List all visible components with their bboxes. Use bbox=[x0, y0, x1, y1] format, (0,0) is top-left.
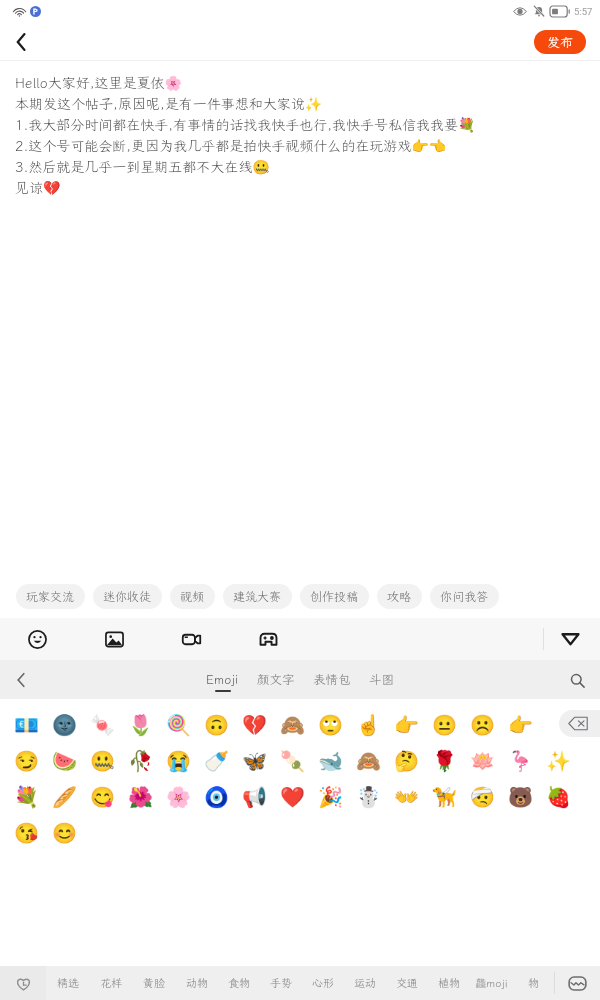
button[interactable]: 🍡 bbox=[274, 742, 310, 778]
button[interactable]: Recent bbox=[0, 966, 46, 1000]
button[interactable]: 😭 bbox=[160, 742, 196, 778]
button[interactable]: Emoji bbox=[197, 668, 248, 694]
staticText: 交通 bbox=[396, 976, 418, 990]
button[interactable]: 动物 bbox=[175, 966, 218, 1000]
button[interactable]: 🍉 bbox=[46, 742, 82, 778]
button[interactable]: Emoji bbox=[22, 624, 52, 654]
button[interactable]: Image bbox=[99, 624, 129, 654]
button[interactable]: 🌺 bbox=[122, 778, 158, 814]
button[interactable]: 颜文字 bbox=[248, 668, 304, 694]
button[interactable]: 🐋 bbox=[312, 742, 348, 778]
button[interactable]: 🥖 bbox=[46, 778, 82, 814]
button[interactable]: 运动 bbox=[344, 966, 386, 1000]
button[interactable]: 你问我答 bbox=[430, 584, 499, 609]
button[interactable]: 玩家交流 bbox=[16, 584, 85, 609]
staticText: 🙄 bbox=[318, 713, 343, 736]
button[interactable]: 建筑大赛 bbox=[223, 584, 292, 609]
button[interactable]: Back bbox=[8, 667, 34, 693]
button[interactable]: 🍬 bbox=[84, 706, 120, 742]
button[interactable]: Game bbox=[253, 624, 283, 654]
button[interactable]: 视频 bbox=[170, 584, 215, 609]
button[interactable]: 😏 bbox=[8, 742, 44, 778]
button[interactable]: 🦮 bbox=[426, 778, 462, 814]
button[interactable]: 🦩 bbox=[502, 742, 538, 778]
staticText: Emoji bbox=[206, 671, 239, 687]
button[interactable]: 👉 bbox=[502, 706, 538, 742]
button[interactable]: 🍭 bbox=[160, 706, 196, 742]
button[interactable]: 📢 bbox=[236, 778, 272, 814]
button[interactable]: ☝ bbox=[350, 706, 386, 742]
button[interactable]: 🙈 bbox=[350, 742, 386, 778]
staticText: 😊 bbox=[52, 821, 77, 844]
button[interactable]: 🪷 bbox=[464, 742, 500, 778]
staticText: 🪷 bbox=[470, 749, 495, 772]
button[interactable]: 🌚 bbox=[46, 706, 82, 742]
button[interactable]: 黄脸 bbox=[132, 966, 175, 1000]
staticText: 😏 bbox=[14, 749, 39, 772]
button[interactable]: 💐 bbox=[8, 778, 44, 814]
button[interactable]: 🤐 bbox=[84, 742, 120, 778]
staticText: 创作投稿 bbox=[310, 589, 359, 605]
button[interactable]: 物 bbox=[512, 966, 554, 1000]
button[interactable]: 🌸 bbox=[160, 778, 196, 814]
button[interactable]: 😋 bbox=[84, 778, 120, 814]
button[interactable]: 🍼 bbox=[198, 742, 234, 778]
staticText: 食物 bbox=[228, 976, 250, 990]
staticText: 🥀 bbox=[128, 749, 153, 772]
staticText: 🧿 bbox=[204, 785, 229, 808]
staticText: 😐 bbox=[432, 713, 457, 736]
button[interactable]: Video bbox=[176, 624, 206, 654]
button[interactable]: 手势 bbox=[260, 966, 302, 1000]
button[interactable]: 🙃 bbox=[198, 706, 234, 742]
button[interactable]: ❤ bbox=[274, 778, 310, 814]
button[interactable]: 花样 bbox=[89, 966, 132, 1000]
button[interactable]: Back bbox=[4, 25, 38, 59]
staticText: 🐻 bbox=[508, 785, 533, 808]
button[interactable]: 🧿 bbox=[198, 778, 234, 814]
button[interactable]: 迷你收徒 bbox=[93, 584, 162, 609]
button[interactable]: 🤕 bbox=[464, 778, 500, 814]
button[interactable]: Backspace bbox=[559, 710, 600, 737]
button[interactable]: 斗图 bbox=[360, 668, 404, 694]
button[interactable]: 🦋 bbox=[236, 742, 272, 778]
staticText: Hello大家好,这里是夏依🌸 bbox=[15, 74, 182, 92]
button[interactable]: 💶 bbox=[8, 706, 44, 742]
button[interactable]: 🥀 bbox=[122, 742, 158, 778]
button[interactable]: 👉 bbox=[388, 706, 424, 742]
button[interactable]: 创作投稿 bbox=[300, 584, 369, 609]
button[interactable]: 食物 bbox=[218, 966, 260, 1000]
staticText: 🤐 bbox=[90, 749, 115, 772]
button[interactable]: Collapse keyboard bbox=[557, 626, 583, 652]
button[interactable]: 🙈 bbox=[274, 706, 310, 742]
button[interactable]: 攻略 bbox=[377, 584, 422, 609]
button[interactable]: ☃ bbox=[350, 778, 386, 814]
button[interactable]: 🍓 bbox=[540, 778, 576, 814]
button[interactable]: 植物 bbox=[428, 966, 470, 1000]
button[interactable]: 心形 bbox=[302, 966, 344, 1000]
button[interactable]: 🙄 bbox=[312, 706, 348, 742]
button[interactable]: Emoji keyboard bbox=[555, 966, 600, 1000]
button[interactable]: 🌷 bbox=[122, 706, 158, 742]
button[interactable]: 交通 bbox=[386, 966, 428, 1000]
button[interactable]: ☹ bbox=[464, 706, 500, 742]
staticText: 🦮 bbox=[432, 785, 457, 808]
button[interactable]: 😊 bbox=[46, 814, 82, 850]
button[interactable]: 👐 bbox=[388, 778, 424, 814]
button[interactable]: 🐻 bbox=[502, 778, 538, 814]
button[interactable]: ✨ bbox=[540, 742, 576, 778]
staticText: 物 bbox=[528, 976, 539, 990]
button[interactable]: 💔 bbox=[236, 706, 272, 742]
button[interactable]: 龘moji bbox=[470, 966, 512, 1000]
button[interactable]: 表情包 bbox=[304, 668, 360, 694]
staticText: P bbox=[33, 8, 38, 16]
staticText: ☃ bbox=[356, 785, 381, 808]
button[interactable]: 😘 bbox=[8, 814, 44, 850]
staticText: 建筑大赛 bbox=[233, 589, 282, 605]
button[interactable]: 精选 bbox=[46, 966, 89, 1000]
button[interactable]: 😐 bbox=[426, 706, 462, 742]
button[interactable]: 🌹 bbox=[426, 742, 462, 778]
button[interactable]: 发布 bbox=[534, 30, 586, 54]
button[interactable]: 🤔 bbox=[388, 742, 424, 778]
button[interactable]: Search bbox=[564, 667, 590, 693]
button[interactable]: 🎉 bbox=[312, 778, 348, 814]
